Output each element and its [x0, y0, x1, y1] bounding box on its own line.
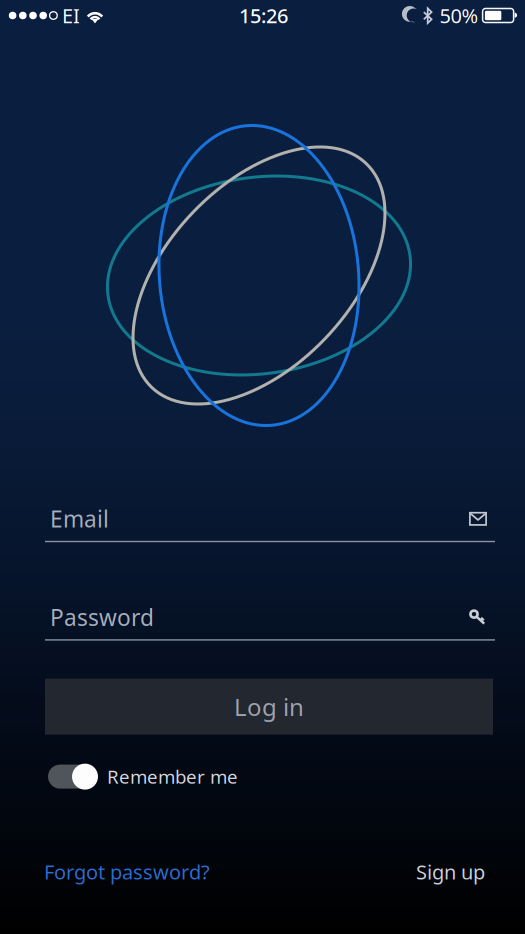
button[interactable]: Remember me [0, 762, 525, 792]
staticText: 15:26 [239, 2, 288, 29]
staticText: Email [50, 504, 109, 534]
staticText: 50% [440, 2, 479, 29]
button[interactable]: Sign up [416, 858, 485, 885]
staticText: Password [50, 602, 154, 632]
staticText: Log in [234, 691, 304, 723]
staticText: Forgot password? [44, 858, 210, 885]
staticText: Remember me [107, 764, 238, 789]
staticText: EI [62, 2, 80, 29]
button[interactable]: Log in [45, 679, 493, 735]
button[interactable]: Forgot password? [44, 858, 210, 885]
staticText: Sign up [416, 858, 485, 885]
